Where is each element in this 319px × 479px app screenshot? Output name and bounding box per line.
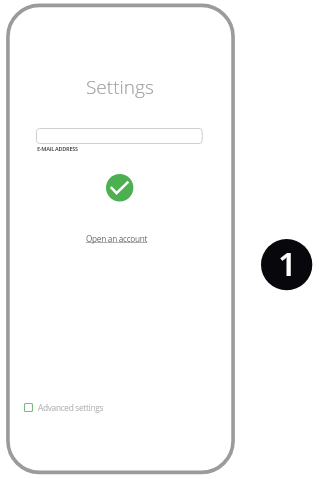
- button[interactable]: Advanced settings: [24, 401, 104, 414]
- button[interactable]: [36, 128, 203, 144]
- staticText: Advanced settings: [38, 402, 104, 413]
- button[interactable]: Open an account: [86, 233, 148, 244]
- staticText: 1: [278, 241, 297, 286]
- staticText: E-MAIL ADDRESS: [37, 145, 78, 152]
- button[interactable]: Step 1: [261, 239, 312, 290]
- staticText: Open an account: [86, 233, 148, 244]
- staticText: Settings: [86, 74, 154, 100]
